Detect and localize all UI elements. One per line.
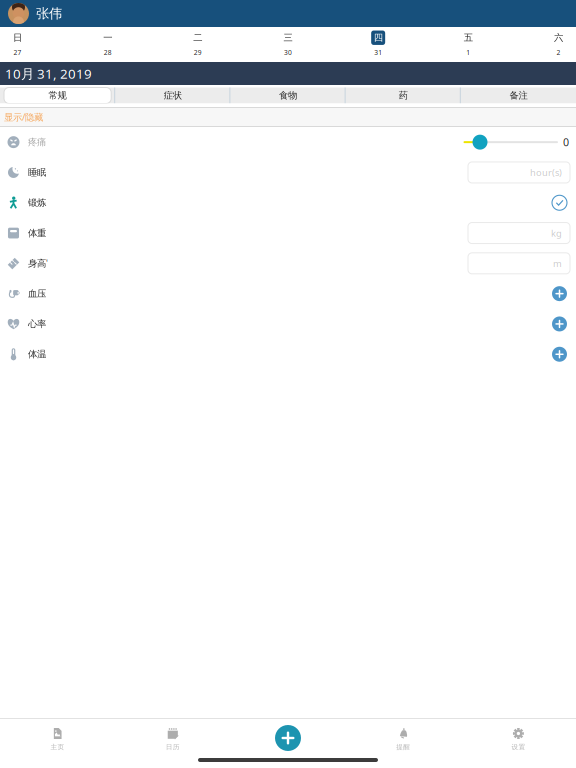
staticText: 主页 xyxy=(51,743,65,751)
button[interactable]: 主页 xyxy=(0,718,115,758)
button[interactable]: 日 xyxy=(0,27,35,62)
staticText: 设置 xyxy=(511,743,525,751)
staticText: kg xyxy=(551,227,562,239)
button[interactable]: Add 血压 xyxy=(543,278,576,309)
staticText: 张伟 xyxy=(36,5,62,22)
staticText: 27 xyxy=(13,48,21,57)
button[interactable]: 提醒 xyxy=(346,718,461,758)
button[interactable]: Exercise done xyxy=(543,188,576,218)
staticText: 身高 xyxy=(28,258,46,269)
staticText: 心率 xyxy=(28,318,46,330)
staticText: 三 xyxy=(283,32,292,43)
button[interactable]: 身高 xyxy=(468,253,570,274)
staticText: m xyxy=(553,257,562,270)
button[interactable]: 二 xyxy=(180,27,215,62)
staticText: 药 xyxy=(399,90,408,101)
staticText: 五 xyxy=(464,32,473,43)
staticText: 四 xyxy=(374,32,383,43)
staticText: 日 xyxy=(13,32,22,43)
staticText: 30 xyxy=(284,48,292,57)
staticText: 常规 xyxy=(49,90,67,101)
button[interactable]: 显示/隐藏 xyxy=(0,108,43,126)
button[interactable]: 张伟 xyxy=(0,0,62,27)
button[interactable]: Add 心率 xyxy=(543,309,576,339)
button[interactable]: 常规 xyxy=(0,87,115,103)
staticText: ' xyxy=(46,258,48,269)
staticText: 1 xyxy=(466,48,470,57)
staticText: 0 xyxy=(563,135,569,149)
staticText: 六 xyxy=(554,32,563,43)
staticText: 2 xyxy=(556,48,560,57)
button[interactable]: 四 xyxy=(361,27,396,62)
button[interactable]: 备注 xyxy=(461,87,576,103)
button[interactable]: 一 xyxy=(90,27,125,62)
button[interactable]: 六 xyxy=(541,27,576,62)
staticText: 疼痛 xyxy=(28,136,46,148)
button[interactable]: Pain level xyxy=(459,127,558,157)
staticText: 29 xyxy=(194,48,202,57)
staticText: 锻炼 xyxy=(28,197,46,208)
button[interactable]: Add 体温 xyxy=(543,339,576,369)
button[interactable]: 三 xyxy=(270,27,305,62)
button[interactable]: 设置 xyxy=(461,718,576,758)
button[interactable]: 食物 xyxy=(230,87,346,103)
staticText: 体重 xyxy=(28,227,46,239)
staticText: 备注 xyxy=(509,90,527,101)
staticText: 二 xyxy=(193,32,202,43)
staticText: 提醒 xyxy=(396,743,410,751)
button[interactable]: Add entry xyxy=(230,718,346,758)
staticText: 日历 xyxy=(166,743,180,751)
staticText: 10月 31, 2019 xyxy=(5,65,92,82)
button[interactable]: 药 xyxy=(346,87,461,103)
button[interactable]: 日历 xyxy=(115,718,230,758)
staticText: 血压 xyxy=(28,288,46,299)
button[interactable]: 睡眠 xyxy=(468,162,570,183)
staticText: 28 xyxy=(104,48,112,57)
button[interactable]: 五 xyxy=(451,27,486,62)
staticText: hour(s) xyxy=(530,166,562,179)
staticText: 症状 xyxy=(164,90,182,101)
staticText: 31 xyxy=(374,48,382,57)
staticText: 一 xyxy=(103,32,112,43)
button[interactable]: 症状 xyxy=(115,87,230,103)
staticText: 体温 xyxy=(28,348,46,360)
staticText: 食物 xyxy=(279,90,297,101)
button[interactable]: 体重 xyxy=(468,223,570,244)
staticText: 显示/隐藏 xyxy=(4,111,43,123)
staticText: 睡眠 xyxy=(28,167,46,178)
